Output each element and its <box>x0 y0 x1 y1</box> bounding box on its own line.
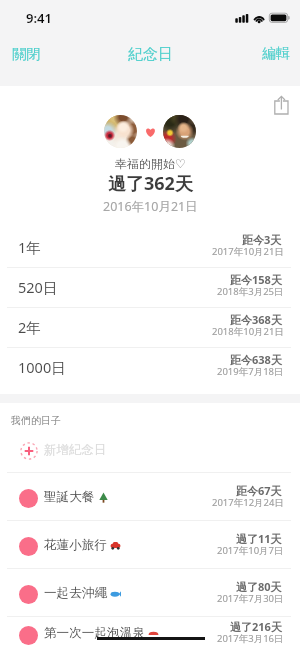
staticText: 距今158天 <box>230 272 282 287</box>
button[interactable]: 一起去沖繩 <box>0 569 300 616</box>
staticText: 過了362天 <box>108 171 193 196</box>
staticText: 2017年7月30日 <box>217 592 284 605</box>
staticText: 距今638天 <box>230 352 282 367</box>
staticText: 2年 <box>18 317 41 337</box>
staticText: 一起去沖繩 <box>44 585 107 601</box>
staticText: 編輯 <box>262 45 290 63</box>
button[interactable]: 聖誕大餐 <box>0 473 300 520</box>
staticText: 幸福的開始♡ <box>115 156 186 171</box>
button[interactable]: 花蓮小旅行 <box>0 521 300 568</box>
button[interactable]: 1000日 <box>0 348 300 387</box>
staticText: 新增紀念日 <box>44 442 107 458</box>
staticText: 2017年12月24日 <box>212 496 284 509</box>
staticText: 2019年7月18日 <box>217 365 284 378</box>
button[interactable]: 新增紀念日 <box>0 425 300 472</box>
button[interactable]: 1年 <box>0 228 300 267</box>
button[interactable]: 2年 <box>0 308 300 347</box>
staticText: 紀念日 <box>128 45 173 64</box>
staticText: 過了80天 <box>236 579 282 594</box>
button[interactable]: 第一次一起泡溫泉 <box>0 617 300 649</box>
button[interactable]: Share <box>270 86 293 112</box>
staticText: 距今3天 <box>242 232 282 247</box>
button[interactable]: 編輯 <box>250 36 300 72</box>
button[interactable]: 關閉 <box>0 36 53 72</box>
button[interactable]: 520日 <box>0 268 300 307</box>
staticText: 2017年10月21日 <box>212 245 284 258</box>
staticText: 花蓮小旅行 <box>44 537 107 553</box>
staticText: 過了11天 <box>236 531 282 546</box>
staticText: 1000日 <box>18 357 66 377</box>
staticText: 520日 <box>18 277 58 297</box>
staticText: 2016年10月21日 <box>103 198 198 215</box>
staticText: 2017年10月7日 <box>217 544 284 557</box>
staticText: 9:41 <box>26 9 52 27</box>
staticText: 關閉 <box>12 45 41 63</box>
staticText: 1年 <box>18 237 41 257</box>
staticText: 2018年10月21日 <box>212 325 284 338</box>
staticText: 我們的日子 <box>11 414 61 427</box>
staticText: 距今368天 <box>230 312 282 327</box>
staticText: 距今67天 <box>236 483 282 498</box>
staticText: 2017年3月16日 <box>217 632 284 645</box>
staticText: 2018年3月25日 <box>217 285 284 298</box>
staticText: 第一次一起泡溫泉 <box>44 625 145 641</box>
staticText: 過了216天 <box>230 619 282 634</box>
staticText: 聖誕大餐 <box>44 489 95 505</box>
